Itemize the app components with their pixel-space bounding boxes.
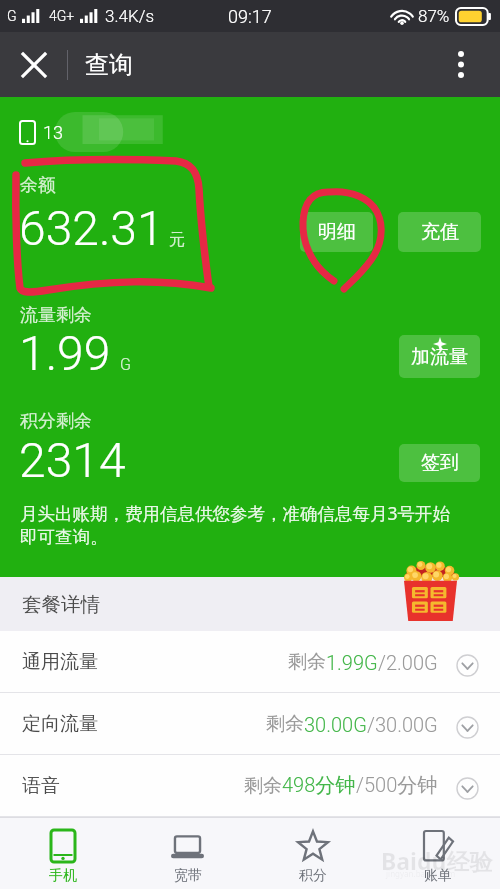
button[interactable]: More options [422, 32, 500, 97]
staticText: G [7, 8, 17, 24]
button[interactable]: 语音 [0, 755, 500, 817]
staticText: 元 [169, 230, 185, 250]
staticText: /30.00G [367, 713, 438, 736]
staticText: 09:17 [228, 6, 272, 27]
staticText: 查询 [85, 50, 133, 80]
button[interactable]: 签到 [399, 444, 480, 482]
staticText: 积分 [299, 867, 327, 885]
staticText: 明细 [318, 220, 356, 244]
staticText: 语音 [22, 774, 60, 798]
staticText: 手机 [49, 867, 77, 885]
staticText: Baidu经验 [381, 845, 493, 876]
staticText: 月头出账期，费用信息供您参考，准确信息每月3号开始即可查询。 [20, 501, 463, 548]
button[interactable]: 积分 [250, 818, 375, 889]
staticText: 签到 [421, 451, 459, 475]
button[interactable]: 宽带 [125, 818, 250, 889]
staticText: 套餐详情 [22, 592, 100, 617]
staticText: 498分钟 [282, 773, 356, 798]
staticText: 632.31 [19, 200, 164, 256]
staticText: jingyan.baidu.com [386, 868, 456, 879]
staticText: 4G+ [49, 8, 75, 24]
staticText: G [120, 355, 131, 374]
button[interactable]: 手机 [0, 818, 125, 889]
staticText: 1.99 [19, 325, 111, 381]
staticText: 定向流量 [22, 712, 98, 736]
staticText: 3.4K/s [105, 6, 155, 26]
button[interactable]: 定向流量 [0, 693, 500, 755]
staticText: 通用流量 [22, 650, 98, 674]
staticText: 积分剩余 [20, 410, 92, 433]
button[interactable]: 明细 [300, 212, 373, 252]
staticText: 剩余 [244, 774, 282, 798]
staticText: 30.00G [304, 713, 367, 736]
staticText: 87% [418, 6, 450, 26]
staticText: 流量剩余 [20, 304, 92, 327]
button[interactable]: 账单 [375, 818, 500, 889]
staticText: /500分钟 [356, 773, 438, 798]
staticText: 充值 [421, 220, 459, 244]
button[interactable]: 充值 [398, 212, 481, 252]
staticText: 1.99G [326, 651, 378, 674]
button[interactable]: Close [0, 32, 67, 97]
staticText: 剩余 [288, 650, 326, 674]
staticText: /2.00G [378, 651, 438, 674]
staticText: 余额 [20, 174, 56, 197]
staticText: 账单 [424, 867, 452, 885]
staticText: 剩余 [266, 712, 304, 736]
staticText: 13 [43, 122, 63, 143]
button[interactable]: 通用流量 [0, 631, 500, 693]
staticText: 宽带 [174, 867, 202, 885]
staticText: 2314 [19, 432, 126, 488]
staticText: 加流量 [411, 345, 468, 369]
button[interactable]: 加流量 [399, 335, 480, 378]
button[interactable]: 流量红包 [404, 558, 457, 621]
